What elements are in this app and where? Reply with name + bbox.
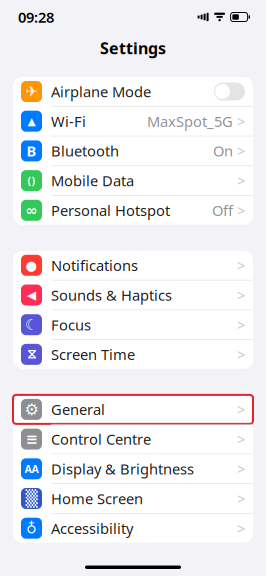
staticText: MaxSpot_5G (147, 111, 233, 131)
staticText: Personal Hotspot (51, 201, 170, 220)
button[interactable]: ● (13, 251, 253, 280)
staticText: Control Centre (51, 429, 151, 449)
staticText: Home Screen (51, 489, 143, 508)
staticText: > (237, 400, 245, 419)
button[interactable]: ⧖ (13, 340, 253, 369)
staticText: Sounds & Haptics (51, 285, 172, 305)
staticText: > (237, 459, 245, 479)
button[interactable]: B (13, 136, 253, 165)
staticText: Wi-Fi (51, 111, 86, 131)
staticText: > (237, 315, 245, 334)
staticText: ● (25, 258, 37, 273)
button[interactable]: ◀ (13, 280, 253, 309)
staticText: > (237, 171, 245, 190)
staticText: 09:28 (18, 7, 54, 27)
staticText: Mobile Data (51, 171, 134, 190)
staticText: ☾ (25, 316, 38, 333)
staticText: ♁ (26, 520, 37, 536)
button[interactable]: ▒ (13, 484, 253, 513)
staticText: Notifications (51, 256, 138, 275)
staticText: ✈ (25, 83, 37, 100)
staticText: Airplane Mode (51, 82, 151, 101)
staticText: > (237, 489, 245, 508)
button[interactable]: ♁ (13, 514, 253, 543)
staticText: Settings (100, 37, 166, 59)
staticText: ⧖ (27, 348, 36, 361)
staticText: > (237, 111, 245, 131)
staticText: > (237, 429, 245, 449)
button[interactable]: () (13, 166, 253, 195)
staticText: Off (212, 201, 233, 220)
staticText: > (237, 141, 245, 161)
staticText: Bluetooth (51, 141, 119, 161)
button[interactable]: ▲ (13, 107, 253, 136)
button[interactable]: AA (13, 454, 253, 483)
staticText: > (237, 345, 245, 364)
staticText: > (237, 256, 245, 275)
staticText: > (237, 518, 245, 538)
staticText: ∞ (25, 202, 37, 219)
staticText: ▒ (25, 489, 37, 508)
staticText: ◀ (27, 288, 36, 302)
staticText: B (26, 141, 36, 161)
staticText: ▲ (27, 115, 35, 127)
staticText: Accessibility (51, 518, 133, 538)
staticText: General (51, 400, 105, 419)
staticText: Display & Brightness (51, 459, 194, 479)
button[interactable]: ≡ (13, 425, 253, 454)
staticText: Focus (51, 315, 91, 334)
staticText: > (237, 201, 245, 220)
button[interactable]: ∞ (13, 196, 253, 225)
staticText: AA (24, 462, 38, 476)
staticText: () (27, 173, 35, 188)
button[interactable]: ☾ (13, 310, 253, 339)
staticText: ⚙ (24, 400, 38, 418)
button[interactable]: ✈ (13, 77, 253, 106)
staticText: > (237, 285, 245, 305)
staticText: On (213, 141, 233, 161)
button[interactable]: ⚙ (13, 395, 253, 424)
staticText: ≡ (25, 431, 37, 447)
staticText: Screen Time (51, 345, 135, 364)
